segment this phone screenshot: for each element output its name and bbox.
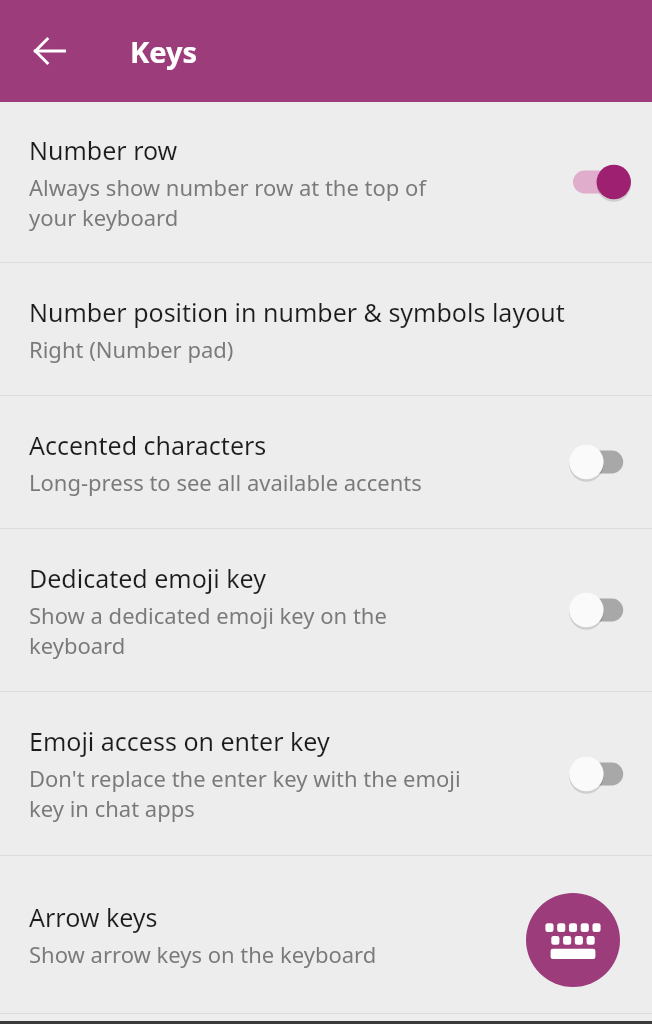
button[interactable]: Number position in number & symbols layo… <box>0 263 652 395</box>
button[interactable]: Back <box>18 19 82 83</box>
staticText: Arrow keys <box>29 900 158 934</box>
staticText: Right (Number pad) <box>29 334 234 364</box>
staticText: Always show number row at the top of you… <box>29 172 426 232</box>
staticText: Don't replace the enter key with the emo… <box>29 763 461 823</box>
staticText: Accented characters <box>29 428 267 462</box>
button[interactable]: Dedicated emoji key toggle <box>548 529 652 691</box>
staticText: Long-press to see all available accents <box>29 467 422 497</box>
staticText: Show arrow keys on the keyboard <box>29 939 377 969</box>
button[interactable]: Open keyboard <box>526 893 620 987</box>
button[interactable]: Dedicated emoji key <box>0 529 652 691</box>
staticText: Keys <box>130 32 198 71</box>
staticText: Emoji access on enter key <box>29 724 330 758</box>
button[interactable]: Emoji access on enter key <box>0 692 652 855</box>
staticText: Show a dedicated emoji key on the keyboa… <box>29 600 387 660</box>
button[interactable]: Arrow keys <box>0 856 652 1013</box>
staticText: Number position in number & symbols layo… <box>29 295 565 329</box>
button[interactable]: Number row toggle <box>548 102 652 262</box>
button[interactable]: Number row <box>0 102 652 262</box>
button[interactable]: Accented characters toggle <box>548 396 652 528</box>
staticText: Number row <box>29 133 178 167</box>
button[interactable]: Accented characters <box>0 396 652 528</box>
button[interactable]: Emoji access on enter key toggle <box>548 692 652 855</box>
staticText: Dedicated emoji key <box>29 561 266 595</box>
